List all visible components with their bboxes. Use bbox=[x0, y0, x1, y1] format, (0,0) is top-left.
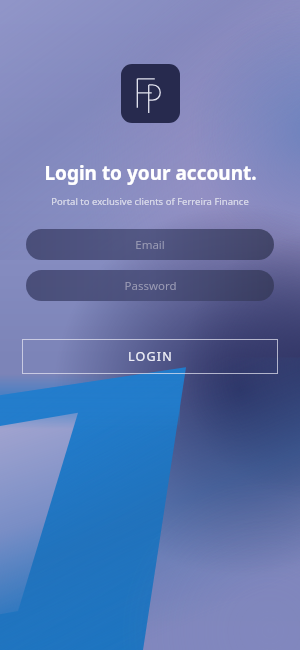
staticText: Email bbox=[135, 237, 165, 253]
button[interactable]: Email bbox=[26, 229, 274, 260]
other: Ferreira Finance logo bbox=[121, 64, 180, 123]
staticText: Portal to exclusive clients of Ferreira … bbox=[51, 195, 249, 208]
staticText: Password bbox=[124, 278, 177, 294]
button[interactable]: LOGIN bbox=[22, 339, 278, 374]
button[interactable]: Password bbox=[26, 270, 274, 301]
staticText: LOGIN bbox=[128, 348, 173, 365]
staticText: Login to your account. bbox=[44, 160, 257, 186]
